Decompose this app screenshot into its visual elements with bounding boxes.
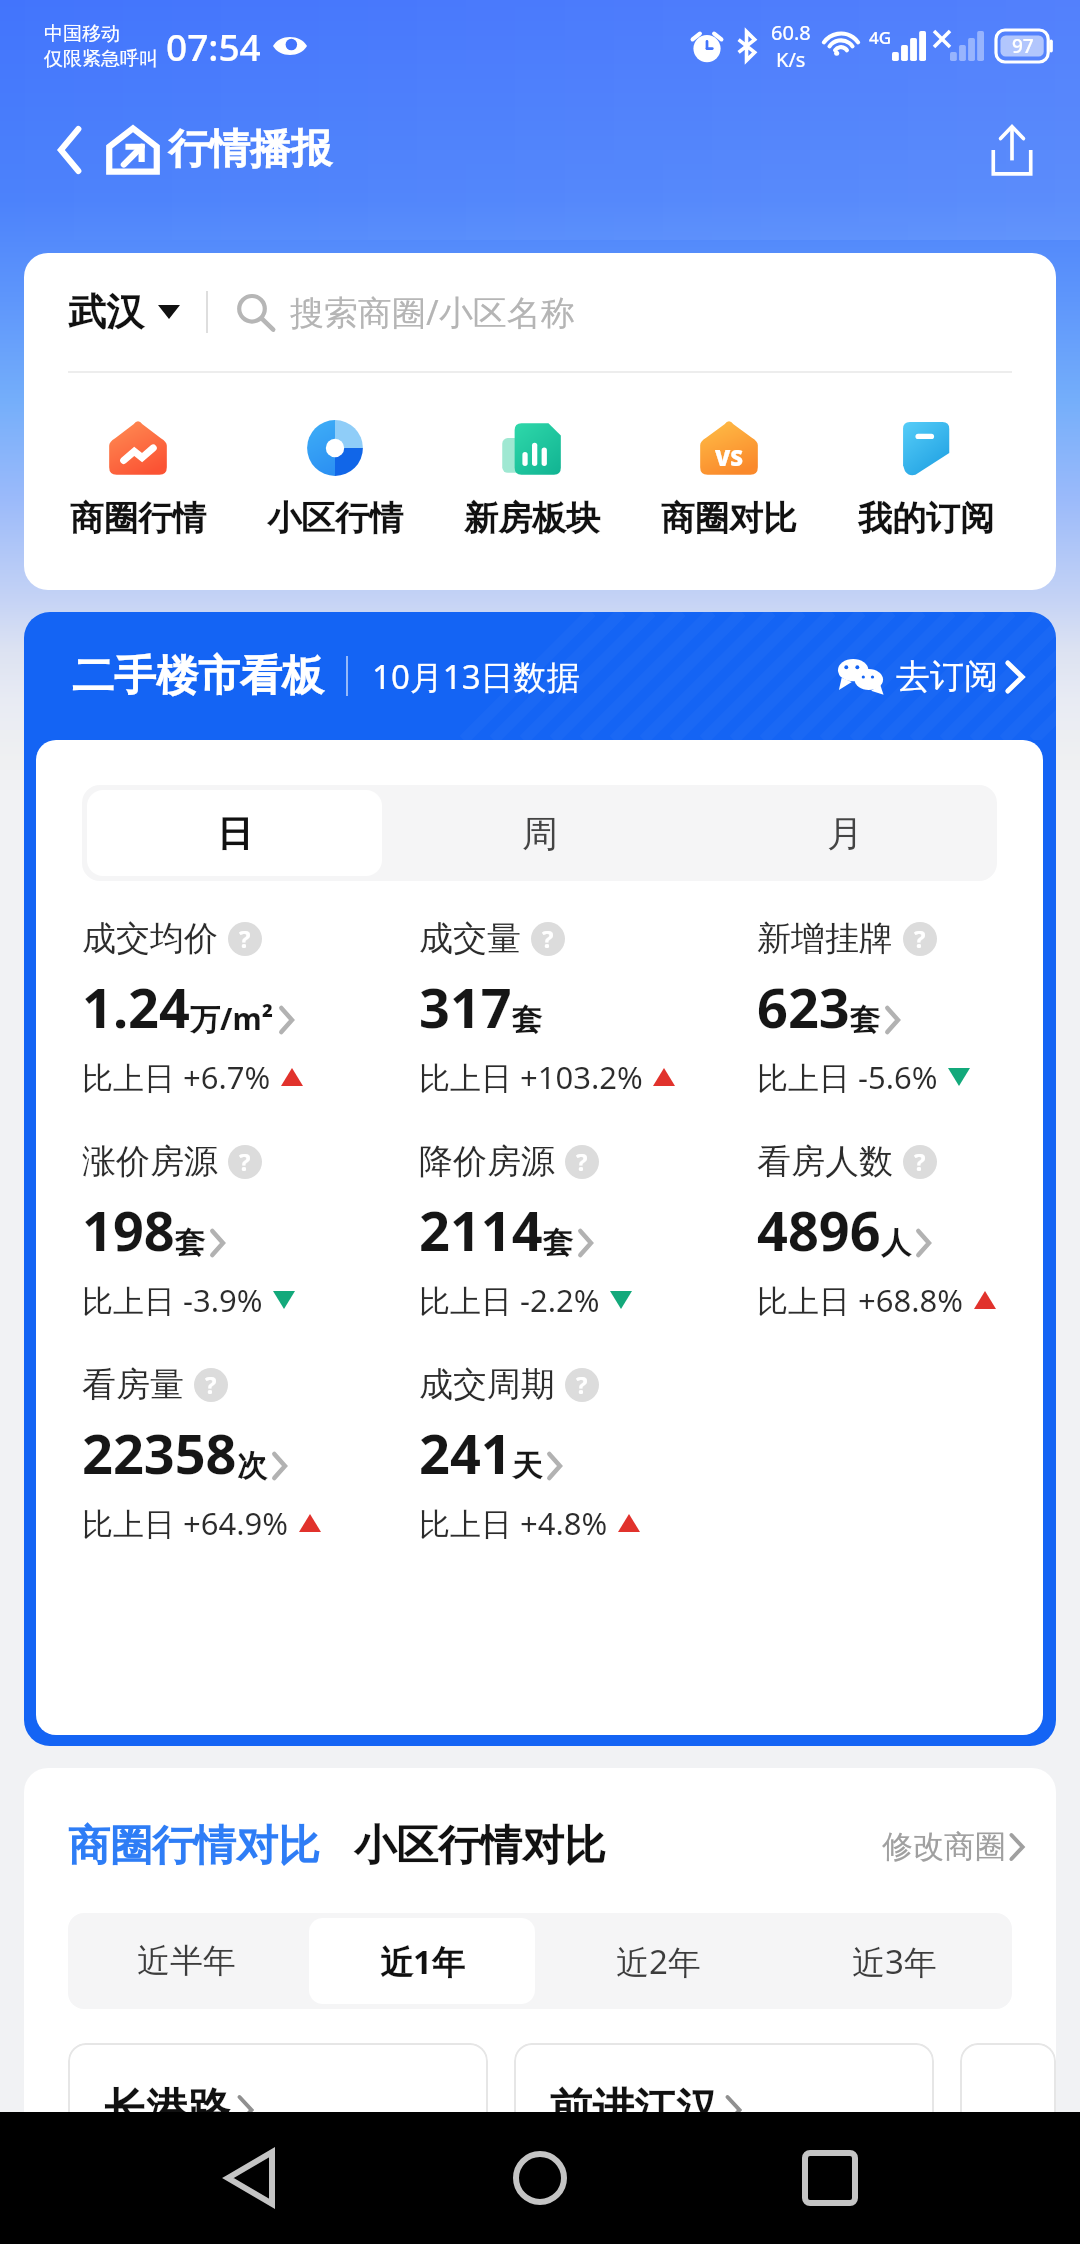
button[interactable]: 小区行情 [236, 417, 433, 540]
staticText: ? [576, 1145, 588, 1178]
button[interactable]: Share [976, 114, 1048, 186]
staticText: 比上日 +6.7% [82, 1056, 271, 1098]
button[interactable]: 小区行情对比 [354, 1820, 606, 1873]
button[interactable]: 前进江汉 [514, 2043, 934, 2168]
button[interactable]: 成交均价 [82, 917, 303, 1098]
staticText: 22358 [82, 1416, 237, 1490]
staticText: 2114 [419, 1193, 543, 1267]
button[interactable]: 商圈行情 [39, 417, 236, 540]
staticText: 涨价房源 [82, 1140, 218, 1183]
staticText: 近3年 [852, 1939, 937, 1984]
button[interactable]: Recents [775, 2123, 885, 2233]
button[interactable]: Back [44, 124, 96, 176]
button[interactable]: 去订阅 [838, 655, 1024, 698]
staticText: 4896 [757, 1193, 881, 1267]
staticText: ? [914, 922, 926, 955]
button[interactable]: 近1年 [309, 1918, 535, 2004]
staticText: 商圈行情 [70, 497, 206, 540]
staticText: 比上日 -5.6% [757, 1056, 938, 1098]
staticText: 97 [1012, 33, 1034, 59]
button[interactable]: 月 [697, 790, 992, 876]
staticText: ? [239, 922, 251, 955]
button[interactable]: VS [630, 417, 827, 540]
staticText: 比上日 +64.9% [82, 1502, 289, 1544]
staticText: K/s [776, 46, 806, 73]
staticText: ? [205, 1368, 217, 1401]
staticText: VS [715, 442, 743, 472]
button[interactable]: 降价房源 [419, 1140, 632, 1321]
button[interactable]: Home [485, 2123, 595, 2233]
button[interactable]: 新增挂牌 [757, 917, 970, 1098]
staticText: 人 [881, 1224, 911, 1262]
staticText: 套 [543, 1224, 573, 1262]
staticText: 新房板块 [464, 497, 600, 540]
staticText: 241 [419, 1416, 512, 1490]
button[interactable]: 看房量 [82, 1363, 321, 1544]
staticText: 新增挂牌 [757, 917, 893, 960]
staticText: ? [542, 922, 554, 955]
staticText: ? [239, 1145, 251, 1178]
staticText: 比上日 -2.2% [419, 1279, 600, 1321]
staticText: 317 [419, 970, 512, 1044]
button[interactable]: 武汉 [68, 253, 1026, 371]
button[interactable]: 成交量 [419, 917, 675, 1098]
staticText: 看房人数 [757, 1140, 893, 1183]
staticText: 近2年 [616, 1939, 701, 1984]
staticText: 成交均价 [82, 917, 218, 960]
staticText: 降价房源 [419, 1140, 555, 1183]
staticText: 套 [850, 1001, 880, 1039]
staticText: 仅限紧急呼叫 [44, 47, 158, 71]
staticText: 商圈行情对比 [68, 1820, 320, 1873]
button[interactable]: 近2年 [545, 1918, 771, 2004]
staticText: 198 [82, 1193, 175, 1267]
staticText: 10月13日数据 [372, 654, 580, 699]
staticText: 次 [237, 1447, 267, 1485]
staticText: 07:54 [166, 21, 261, 71]
staticText: 60.8 [771, 19, 811, 46]
staticText: ? [914, 1145, 926, 1178]
button[interactable]: 新房板块 [433, 417, 630, 540]
button[interactable]: 近3年 [781, 1918, 1007, 2004]
staticText: 小区行情 [267, 497, 403, 540]
button[interactable]: 近半年 [73, 1918, 299, 2004]
button[interactable]: 成交周期 [419, 1363, 640, 1544]
staticText: 前进江汉 [550, 2083, 718, 2136]
staticText: 比上日 +4.8% [419, 1502, 608, 1544]
staticText: 行情播报 [168, 124, 332, 176]
staticText: 月 [827, 811, 863, 856]
button[interactable]: 修改商圈 [882, 1827, 1024, 1866]
button[interactable]: 长港路 [68, 2043, 488, 2168]
staticText: 二手楼市看板 [72, 650, 324, 703]
staticText: 比上日 +68.8% [757, 1279, 964, 1321]
staticText: 中国移动 [44, 22, 120, 46]
staticText: ? [576, 1368, 588, 1401]
button[interactable]: 看房人数 [757, 1140, 996, 1321]
staticText: 近半年 [137, 1940, 236, 1982]
staticText: 武汉 [68, 288, 144, 336]
staticText: 成交周期 [419, 1363, 555, 1406]
button[interactable]: 商圈行情对比 [68, 1820, 320, 1873]
staticText: 看房量 [82, 1363, 184, 1406]
staticText: 1.24 [82, 970, 190, 1044]
staticText: 周 [522, 811, 558, 856]
staticText: 比上日 -3.9% [82, 1279, 263, 1321]
staticText: 比上日 +103.2% [419, 1056, 643, 1098]
button[interactable]: Back [195, 2123, 305, 2233]
button[interactable]: 周 [392, 790, 687, 876]
staticText: 搜索商圈/小区名称 [290, 289, 575, 335]
staticText: 623 [757, 970, 850, 1044]
button[interactable]: 我的订阅 [827, 417, 1024, 540]
staticText: 长港路 [104, 2083, 230, 2136]
staticText: 天 [512, 1447, 542, 1485]
staticText: 我的订阅 [858, 497, 994, 540]
staticText: 套 [175, 1224, 205, 1262]
button[interactable]: 日 [87, 790, 382, 876]
staticText: 万/m² [190, 998, 274, 1039]
staticText: 成交量 [419, 917, 521, 960]
staticText: 套 [512, 1001, 542, 1039]
staticText: 4G [869, 26, 892, 49]
staticText: 商圈对比 [661, 497, 797, 540]
button[interactable]: 涨价房源 [82, 1140, 295, 1321]
staticText: 小区行情对比 [354, 1820, 606, 1873]
staticText: 近1年 [380, 1939, 465, 1984]
